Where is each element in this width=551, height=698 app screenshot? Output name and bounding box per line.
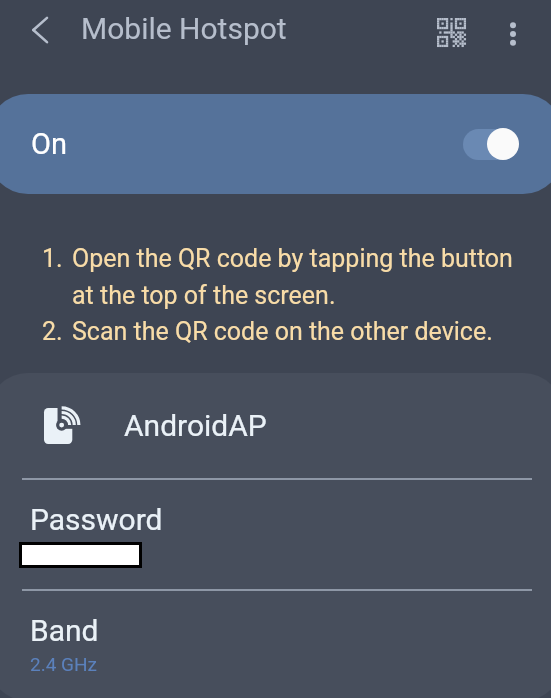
staticText: AndroidAP	[124, 408, 267, 443]
button[interactable]: Show QR code	[429, 10, 473, 54]
button[interactable]: AndroidAP	[0, 373, 551, 478]
staticText: Band	[30, 613, 99, 648]
staticText: On	[31, 127, 67, 161]
button[interactable]: Band	[0, 591, 551, 698]
staticText: 1.	[42, 244, 72, 273]
button[interactable]: On	[0, 94, 551, 194]
staticText: 2.	[42, 317, 72, 346]
staticText: Mobile Hotspot	[81, 11, 287, 46]
staticText: 2.4 GHz	[30, 653, 98, 675]
staticText: Scan the QR code on the other device.	[72, 317, 493, 346]
button[interactable]: Password	[0, 480, 551, 589]
button[interactable]: Back	[19, 8, 63, 52]
staticText: Open the QR code by tapping the button a…	[72, 244, 530, 310]
button[interactable]: More options	[491, 12, 535, 56]
staticText: Password	[30, 502, 163, 537]
